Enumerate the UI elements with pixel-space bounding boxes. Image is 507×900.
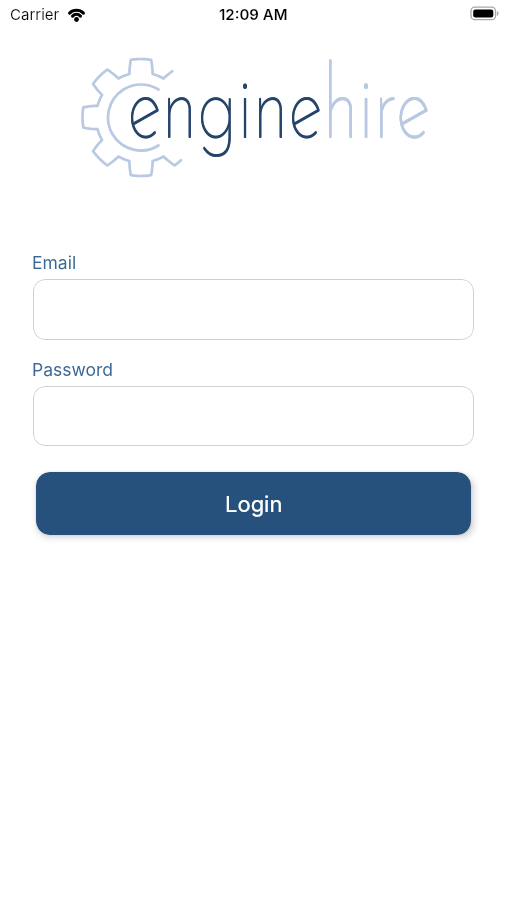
staticText: enginehire (127, 61, 430, 163)
button[interactable]: Login (36, 472, 471, 535)
button[interactable] (33, 279, 474, 340)
staticText: 12:09 AM (219, 5, 288, 23)
staticText: enginehire (127, 60, 430, 162)
staticText: Password (32, 359, 113, 380)
staticText: Email (32, 252, 77, 273)
staticText: enginehire (128, 61, 431, 163)
staticText: Login (225, 491, 283, 518)
button[interactable] (33, 386, 474, 446)
staticText: enginehire (128, 60, 431, 162)
staticText: Carrier (10, 5, 60, 23)
